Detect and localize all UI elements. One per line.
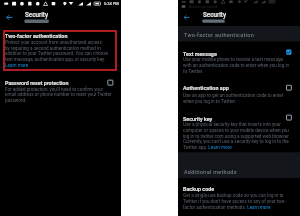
staticText: addition to your Twitter password. You c… — [5, 51, 108, 56]
staticText: Device connected — [189, 5, 218, 9]
staticText: Get a single-use backup code so you can … — [183, 193, 284, 198]
staticText: Additional methods — [184, 169, 237, 175]
staticText: to Twitter. — [183, 69, 204, 74]
staticText: Backup code — [183, 186, 215, 192]
staticText: text message, authentication app, or sec… — [5, 57, 106, 62]
button[interactable]: Authentication app — [178, 82, 300, 107]
staticText: Two-factor authentication — [184, 32, 254, 38]
staticText: Use your mobile phone to receive a text … — [183, 57, 283, 62]
staticText: Use an app to get an authentication code… — [183, 93, 284, 98]
staticText: For added protection, you'll need to con… — [5, 87, 104, 92]
staticText: computer or spaces to your mobile device… — [183, 128, 289, 133]
staticText: Security key — [183, 116, 213, 122]
staticText: Security — [203, 11, 226, 18]
staticText: factor authentication methods. Learn mor… — [183, 205, 271, 210]
button[interactable]: Backup code — [178, 182, 300, 214]
staticText: password. — [5, 98, 27, 103]
staticText: by requiring a second authentication met… — [5, 46, 101, 51]
staticText: log in to twitter.com using a supported … — [183, 134, 290, 139]
staticText: Two-factor authentication — [5, 33, 68, 39]
staticText: Password reset protection — [5, 80, 69, 86]
button[interactable]: Back — [181, 12, 193, 24]
staticText: Twitter app. Learn more — [183, 145, 232, 150]
staticText: when you log in to Twitter. — [183, 99, 237, 104]
button[interactable]: Security key — [178, 112, 300, 152]
staticText: Authentication app — [183, 85, 229, 91]
button[interactable]: Text message — [178, 47, 300, 77]
button[interactable]: Back — [4, 12, 16, 24]
staticText: email address or phone number to reset y… — [5, 92, 112, 97]
staticText: Currently, you can't use a security key … — [183, 139, 289, 144]
staticText: with an authentication code to enter whe… — [183, 63, 290, 68]
staticText: Use a physical security key that inserts… — [183, 122, 281, 127]
button[interactable]: Two-factor authentication — [0, 29, 121, 70]
button[interactable]: Password reset protection — [0, 76, 121, 106]
staticText: Twitter if you don't have access to any … — [183, 199, 286, 204]
staticText: 6:24 PM — [104, 1, 119, 6]
staticText: Text message — [183, 51, 217, 57]
staticText: Protect your account from unauthorized a… — [5, 40, 102, 45]
staticText: Security — [25, 11, 48, 18]
staticText: Learn more — [5, 63, 29, 68]
